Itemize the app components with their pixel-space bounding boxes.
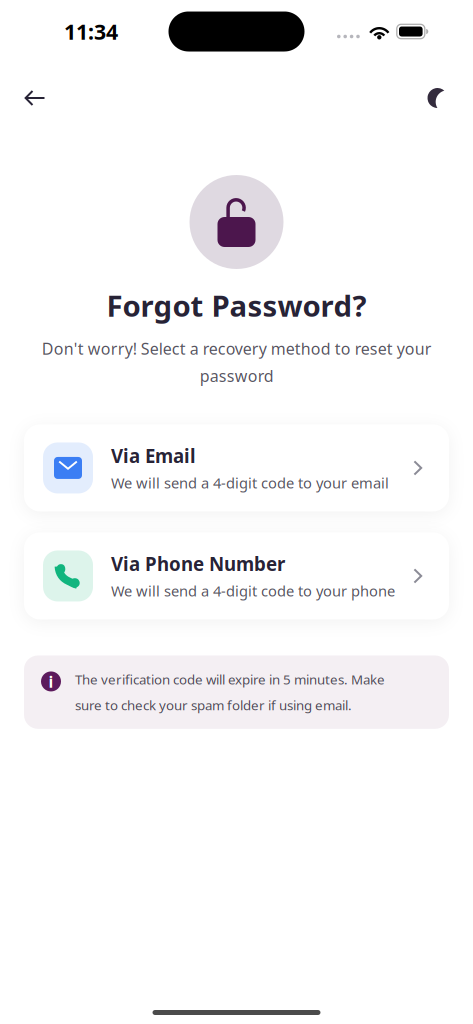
- staticText: Via Email: [111, 443, 196, 468]
- staticText: i: [48, 671, 53, 692]
- staticText: 11:34: [64, 17, 118, 46]
- button[interactable]: Back: [16, 81, 54, 115]
- button[interactable]: Toggle dark mode: [419, 79, 456, 116]
- button[interactable]: Via Email: [24, 424, 449, 511]
- staticText: Forgot Password?: [106, 286, 366, 325]
- staticText: Don't worry! Select a recovery method to…: [41, 338, 431, 386]
- button[interactable]: Via Phone Number: [24, 532, 449, 619]
- staticText: We will send a 4-digit code to your phon…: [111, 581, 395, 601]
- staticText: The verification code will expire in 5 m…: [75, 670, 385, 714]
- staticText: Via Phone Number: [111, 551, 285, 576]
- staticText: We will send a 4-digit code to your emai…: [111, 473, 389, 493]
